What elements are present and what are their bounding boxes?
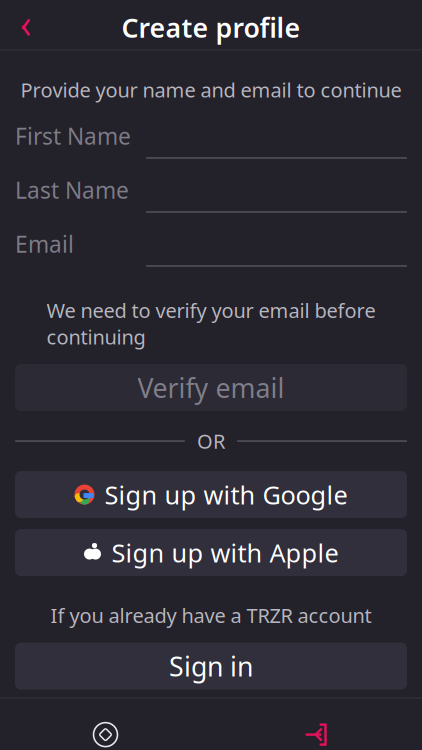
button[interactable]: Verify email — [15, 364, 407, 411]
staticText: Create profile — [121, 10, 300, 45]
staticText: OR — [197, 428, 225, 454]
staticText: Email — [15, 229, 74, 259]
button[interactable]: Last Name — [15, 175, 407, 219]
staticText: Sign up with Apple — [111, 536, 338, 569]
button[interactable]: Sign up with Google — [15, 471, 407, 518]
staticText: Last Name — [15, 175, 129, 205]
staticText: If you already have a TRZR account — [50, 602, 371, 629]
button[interactable]: Sign in — [211, 699, 422, 750]
button[interactable]: First Name — [15, 121, 407, 165]
button[interactable]: Sign up with Apple — [15, 529, 407, 576]
button[interactable]: Explore — [0, 699, 211, 750]
staticText: We need to verify your email before cont… — [46, 297, 375, 350]
button[interactable]: Sign in — [15, 643, 407, 690]
staticText: Sign in — [169, 648, 253, 684]
button[interactable]: Back — [4, 5, 48, 49]
staticText: First Name — [15, 121, 131, 151]
staticText: Verify email — [137, 370, 284, 405]
staticText: Sign up with Google — [104, 478, 347, 511]
button[interactable]: Email — [15, 229, 407, 273]
staticText: Provide your name and email to continue — [20, 76, 401, 103]
